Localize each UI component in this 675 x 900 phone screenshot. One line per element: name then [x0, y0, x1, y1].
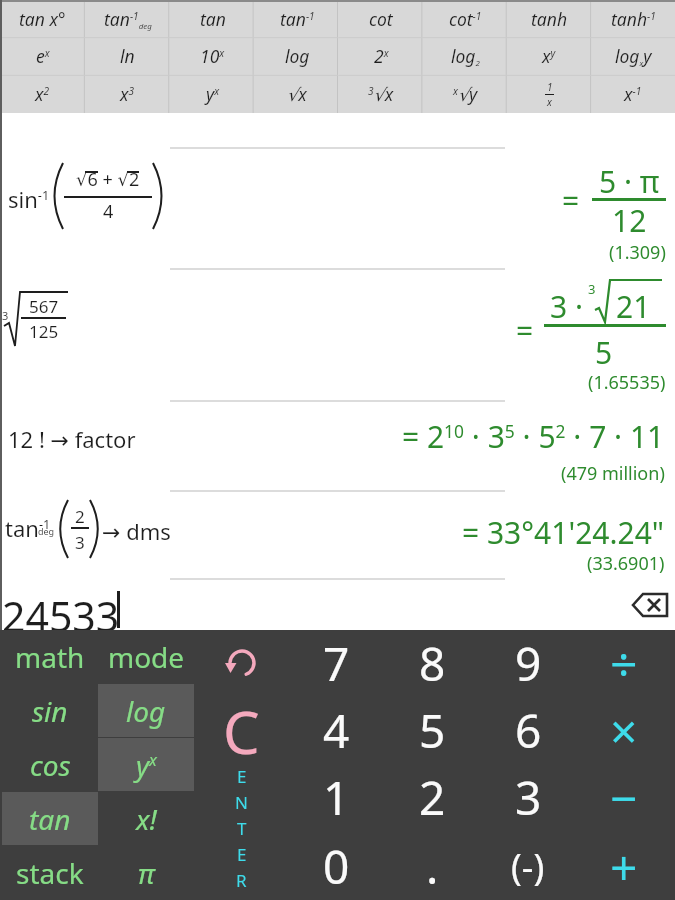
- button[interactable]: logxy: [591, 37, 675, 75]
- staticText: 10x: [200, 44, 225, 68]
- button[interactable]: +: [576, 833, 672, 900]
- button[interactable]: √x: [255, 75, 339, 113]
- button[interactable]: 0: [288, 833, 384, 900]
- staticText: ×: [610, 698, 638, 763]
- button[interactable]: log2: [423, 37, 507, 75]
- button[interactable]: π: [98, 846, 194, 900]
- button[interactable]: tan: [170, 0, 255, 37]
- staticText: N: [235, 791, 248, 814]
- staticText: ex: [36, 44, 50, 68]
- staticText: tanh: [531, 7, 568, 31]
- button[interactable]: 3√x: [339, 75, 423, 113]
- staticText: stack: [16, 854, 84, 892]
- staticText: E: [237, 843, 247, 866]
- staticText: 5: [595, 332, 613, 366]
- staticText: x√y: [453, 82, 478, 106]
- button[interactable]: tan: [2, 792, 98, 846]
- staticText: ln: [120, 44, 135, 68]
- button[interactable]: (-): [480, 833, 576, 900]
- button[interactable]: cos: [2, 738, 98, 792]
- button[interactable]: tanh: [507, 0, 591, 37]
- button[interactable]: yx: [98, 738, 194, 792]
- button[interactable]: stack: [2, 846, 98, 900]
- button[interactable]: E: [194, 764, 288, 892]
- staticText: = 33°41'24.24": [462, 512, 665, 544]
- button[interactable]: 1: [507, 75, 591, 113]
- button[interactable]: 8: [384, 630, 480, 697]
- button[interactable]: sin: [2, 684, 98, 738]
- button[interactable]: 5: [384, 697, 480, 764]
- button[interactable]: mode: [98, 630, 194, 684]
- staticText: mode: [108, 638, 185, 676]
- staticText: 5: [419, 699, 446, 762]
- staticText: sin: [32, 692, 68, 730]
- button[interactable]: x3: [85, 75, 170, 113]
- button[interactable]: 4: [288, 697, 384, 764]
- staticText: π: [138, 854, 155, 892]
- button[interactable]: tan-1: [255, 0, 339, 37]
- button[interactable]: math: [2, 630, 98, 684]
- staticText: 4: [103, 199, 114, 221]
- button[interactable]: 9: [480, 630, 576, 697]
- button[interactable]: log: [255, 37, 339, 75]
- staticText: → dms: [102, 516, 171, 542]
- staticText: 3: [2, 308, 9, 322]
- button[interactable]: yx: [170, 75, 255, 113]
- button[interactable]: cot-1: [423, 0, 507, 37]
- button[interactable]: log: [98, 684, 194, 738]
- button[interactable]: tanh-1: [591, 0, 675, 37]
- staticText: 3: [588, 280, 596, 296]
- button[interactable]: xy: [507, 37, 591, 75]
- button[interactable]: ÷: [576, 630, 672, 697]
- staticText: 3 ·: [550, 286, 583, 320]
- staticText: 567: [29, 295, 59, 315]
- button[interactable]: 6: [480, 697, 576, 764]
- staticText: x: [547, 95, 552, 109]
- button[interactable]: 3: [480, 764, 576, 831]
- staticText: 12 ! → factor: [8, 424, 136, 452]
- button[interactable]: −: [576, 764, 672, 831]
- staticText: 7: [323, 632, 350, 695]
- button[interactable]: x!: [98, 792, 194, 846]
- button[interactable]: x-1: [591, 75, 675, 113]
- staticText: log: [126, 692, 166, 730]
- staticText: logxy: [615, 44, 652, 68]
- staticText: .: [426, 835, 439, 898]
- staticText: =: [562, 180, 580, 214]
- button[interactable]: 7: [288, 630, 384, 697]
- button[interactable]: 2x: [339, 37, 423, 75]
- button[interactable]: .: [384, 833, 480, 900]
- button[interactable]: [194, 634, 288, 692]
- button[interactable]: ex: [0, 37, 85, 75]
- staticText: 21: [616, 286, 651, 320]
- button[interactable]: tan x°: [0, 0, 85, 37]
- staticText: 8: [419, 632, 446, 695]
- staticText: 4: [323, 699, 350, 762]
- button[interactable]: tan-1deg: [85, 0, 170, 37]
- button[interactable]: [0, 580, 675, 630]
- button[interactable]: x√y: [423, 75, 507, 113]
- staticText: log2: [451, 44, 480, 68]
- button[interactable]: 2: [384, 764, 480, 831]
- staticText: tan: [29, 800, 71, 838]
- staticText: tan-1: [280, 7, 315, 31]
- staticText: cos: [30, 746, 71, 784]
- staticText: xy: [542, 44, 556, 68]
- button[interactable]: ×: [576, 697, 672, 764]
- staticText: −: [610, 765, 638, 830]
- staticText: √6 + √2: [76, 167, 140, 191]
- staticText: 2: [419, 766, 446, 829]
- staticText: x3: [120, 82, 135, 106]
- button[interactable]: cot: [339, 0, 423, 37]
- button[interactable]: C: [194, 692, 288, 764]
- button[interactable]: [628, 590, 672, 620]
- staticText: R: [236, 869, 247, 892]
- staticText: 24533: [2, 588, 120, 632]
- staticText: (1.65535): [588, 370, 666, 392]
- staticText: yx: [206, 82, 220, 106]
- button[interactable]: 1: [288, 764, 384, 831]
- staticText: E: [237, 765, 247, 788]
- button[interactable]: x2: [0, 75, 85, 113]
- button[interactable]: 10x: [170, 37, 255, 75]
- button[interactable]: ln: [85, 37, 170, 75]
